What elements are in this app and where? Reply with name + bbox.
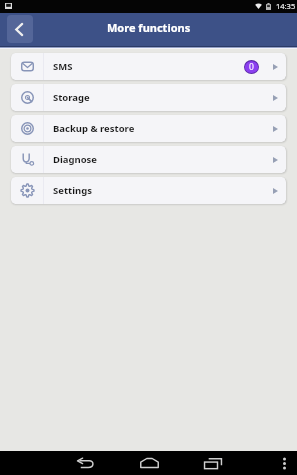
staticText: 14:35 — [276, 1, 296, 11]
button[interactable]: Settings — [11, 177, 286, 204]
button[interactable]: Backup & restore — [11, 115, 286, 142]
staticText: Storage — [53, 91, 90, 104]
button[interactable]: SMS — [11, 53, 286, 80]
button[interactable]: Home — [134, 451, 164, 475]
staticText: More functions — [107, 20, 191, 35]
button[interactable]: Storage — [11, 84, 286, 111]
button[interactable]: More options — [274, 451, 295, 475]
button[interactable]: Recent apps — [198, 451, 228, 475]
staticText: Settings — [53, 184, 92, 197]
staticText: Backup & restore — [53, 122, 135, 135]
button[interactable]: Diagnose — [11, 146, 286, 173]
staticText: 0 — [249, 61, 254, 73]
button[interactable]: Back — [7, 15, 33, 43]
button[interactable]: Back — [70, 451, 100, 475]
staticText: SMS — [53, 60, 73, 73]
staticText: Diagnose — [53, 153, 98, 166]
